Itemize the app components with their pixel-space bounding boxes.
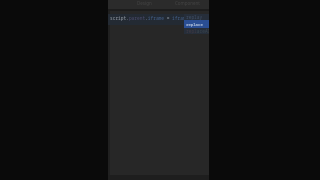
staticText: script.parent.iframe = iframe; <box>110 15 191 21</box>
staticText: replace <box>186 22 203 27</box>
staticText: replaceAll() <box>186 28 209 34</box>
button[interactable]: replaceAll() <box>184 28 209 34</box>
button[interactable]: replay <box>184 14 209 20</box>
staticText: replay <box>186 14 203 20</box>
button[interactable]: Design <box>137 0 152 9</box>
staticText: Component <box>175 0 200 6</box>
button[interactable]: Component <box>175 0 200 9</box>
button[interactable]: replace <box>184 20 209 28</box>
staticText: Design <box>137 0 152 6</box>
